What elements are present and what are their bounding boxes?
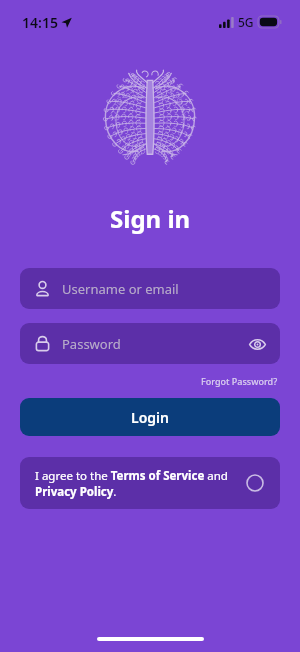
staticText: 5G <box>238 14 254 30</box>
staticText: Forgot Password? <box>201 375 278 387</box>
staticText: Login <box>131 408 169 427</box>
staticText: Sign in <box>110 202 191 235</box>
staticText: I agree to the Terms of Service and Priv… <box>35 468 236 499</box>
staticText: 14:15 <box>22 13 58 32</box>
staticText: Password <box>62 335 121 353</box>
button[interactable]: Show password <box>244 331 270 357</box>
button[interactable]: Forgot Password? <box>199 373 280 389</box>
staticText: Username or email <box>62 280 179 298</box>
button[interactable]: Agree to terms <box>244 472 266 494</box>
button[interactable]: Password <box>20 323 280 364</box>
button[interactable]: Login <box>20 398 280 436</box>
button[interactable]: Username or email <box>20 268 280 309</box>
button[interactable]: I agree to the Terms of Service and Priv… <box>20 457 280 509</box>
